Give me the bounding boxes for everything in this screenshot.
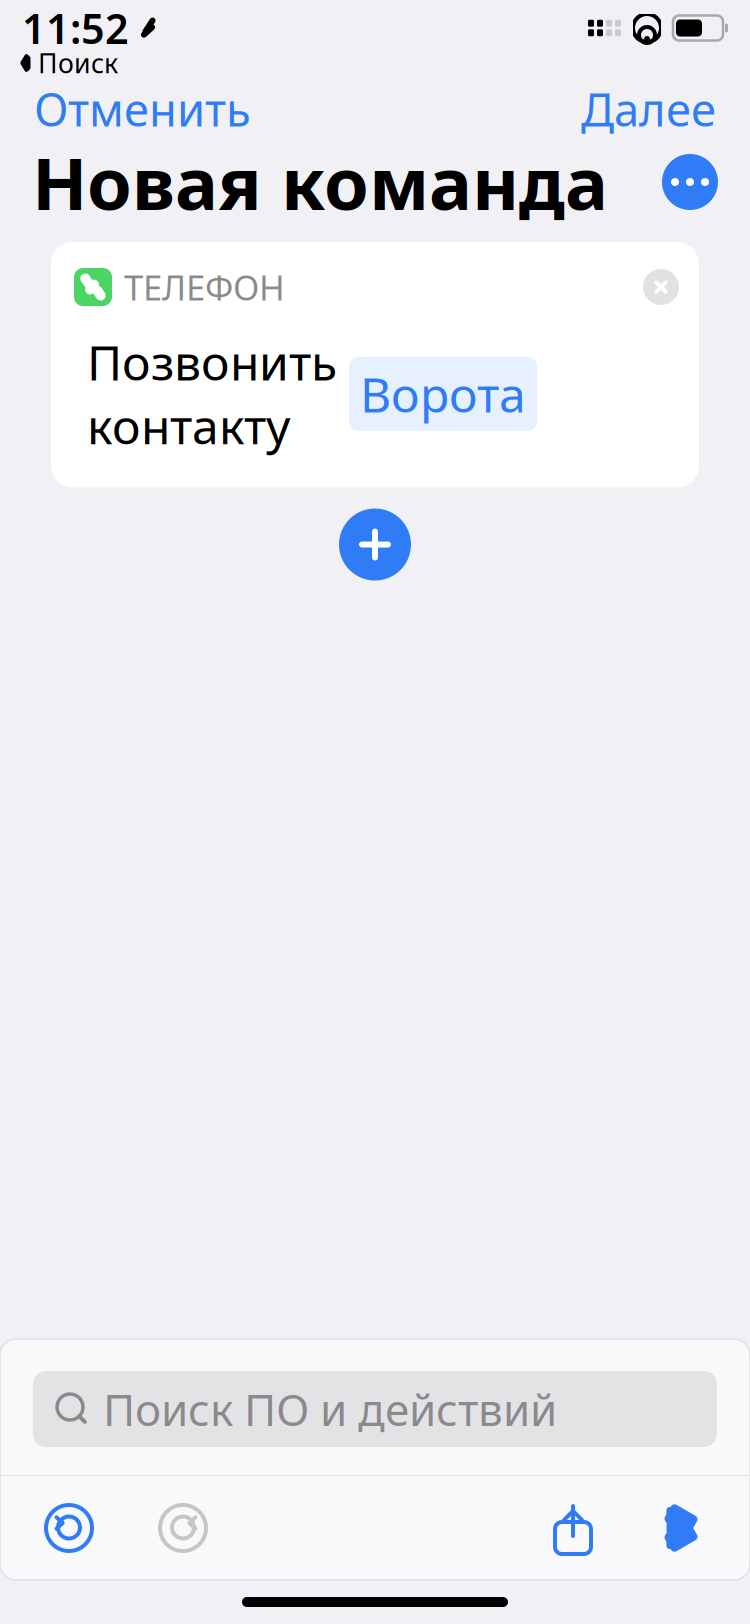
staticText: 11:52 (22, 1, 129, 55)
button[interactable]: Далее (571, 71, 726, 147)
staticText: Поиск ПО и действий (103, 1380, 557, 1438)
staticText: Далее (581, 79, 716, 139)
staticText: Поиск (38, 45, 118, 81)
staticText: Новая команда (32, 134, 608, 230)
staticText: Ворота (360, 362, 526, 426)
button[interactable]: Поделиться (550, 1501, 596, 1555)
button[interactable]: Отменить (24, 71, 261, 147)
button[interactable]: Отменить изменение (43, 1502, 95, 1554)
button[interactable]: Поиск ПО и действий (33, 1371, 717, 1447)
button[interactable]: Добавить действие (339, 508, 411, 580)
button[interactable]: Ворота (349, 357, 537, 431)
staticText: ТЕЛЕФОН (124, 264, 285, 310)
staticText: Позвонить контакту (87, 330, 337, 457)
button[interactable]: Повторить изменение (157, 1502, 209, 1554)
button[interactable]: Запустить (661, 1504, 705, 1552)
staticText: Отменить (34, 79, 251, 139)
button[interactable]: Удалить действие (643, 269, 679, 305)
button[interactable]: Дополнительно (662, 154, 718, 210)
